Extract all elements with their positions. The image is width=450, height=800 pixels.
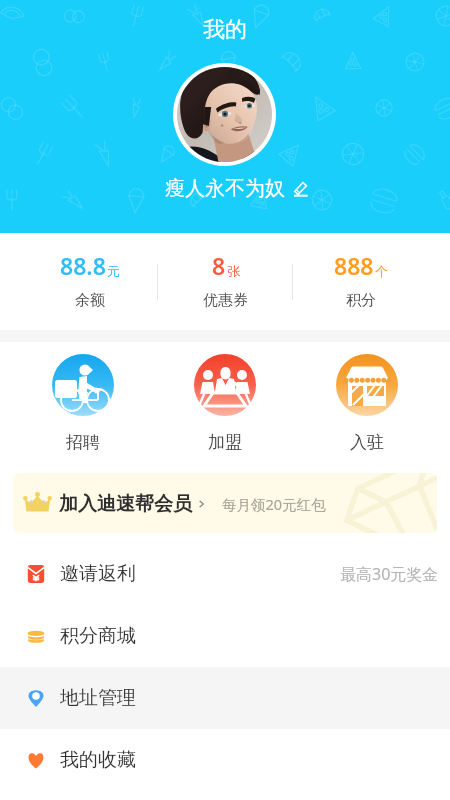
staticText: 邀请返利: [60, 562, 136, 586]
staticText: 最高30元奖金: [340, 563, 439, 585]
staticText: 地址管理: [60, 686, 136, 710]
staticText: 每月领20元红包: [222, 494, 326, 514]
button[interactable]: 888: [293, 233, 428, 330]
button[interactable]: 加盟: [154, 342, 296, 473]
button[interactable]: 8: [158, 233, 293, 330]
staticText: 8: [212, 250, 226, 281]
button[interactable]: 入驻: [296, 342, 438, 473]
staticText: 张: [227, 263, 240, 279]
button[interactable]: 招聘: [12, 342, 154, 473]
other: 入驻: [336, 354, 398, 416]
staticText: 加入迪速帮会员: [59, 492, 192, 516]
staticText: 元: [107, 263, 120, 279]
button[interactable]: 我的收藏: [0, 729, 450, 791]
staticText: 888: [334, 250, 374, 281]
staticText: 积分: [346, 291, 376, 310]
button[interactable]: Edit name: [293, 180, 309, 196]
button[interactable]: 88.8: [22, 233, 158, 330]
staticText: 招聘: [66, 432, 100, 453]
other: 加盟: [194, 354, 256, 416]
staticText: 余额: [75, 291, 105, 310]
staticText: 个: [375, 263, 388, 279]
staticText: 瘦人永不为奴: [165, 176, 285, 201]
staticText: 入驻: [350, 432, 384, 453]
staticText: 我的收藏: [60, 748, 136, 772]
staticText: 我的: [203, 16, 247, 44]
button[interactable]: 积分商城: [0, 605, 450, 667]
staticText: 积分商城: [60, 624, 136, 648]
staticText: 88.8: [60, 250, 106, 281]
other: 招聘: [52, 354, 114, 416]
staticText: 加盟: [208, 432, 242, 453]
button[interactable]: Profile photo: [173, 63, 276, 166]
button[interactable]: 加入迪速帮会员: [13, 473, 437, 533]
button[interactable]: 地址管理: [0, 667, 450, 729]
staticText: 优惠券: [203, 291, 248, 310]
button[interactable]: 瘦人永不为奴: [165, 176, 285, 201]
button[interactable]: 邀请返利: [0, 543, 450, 605]
